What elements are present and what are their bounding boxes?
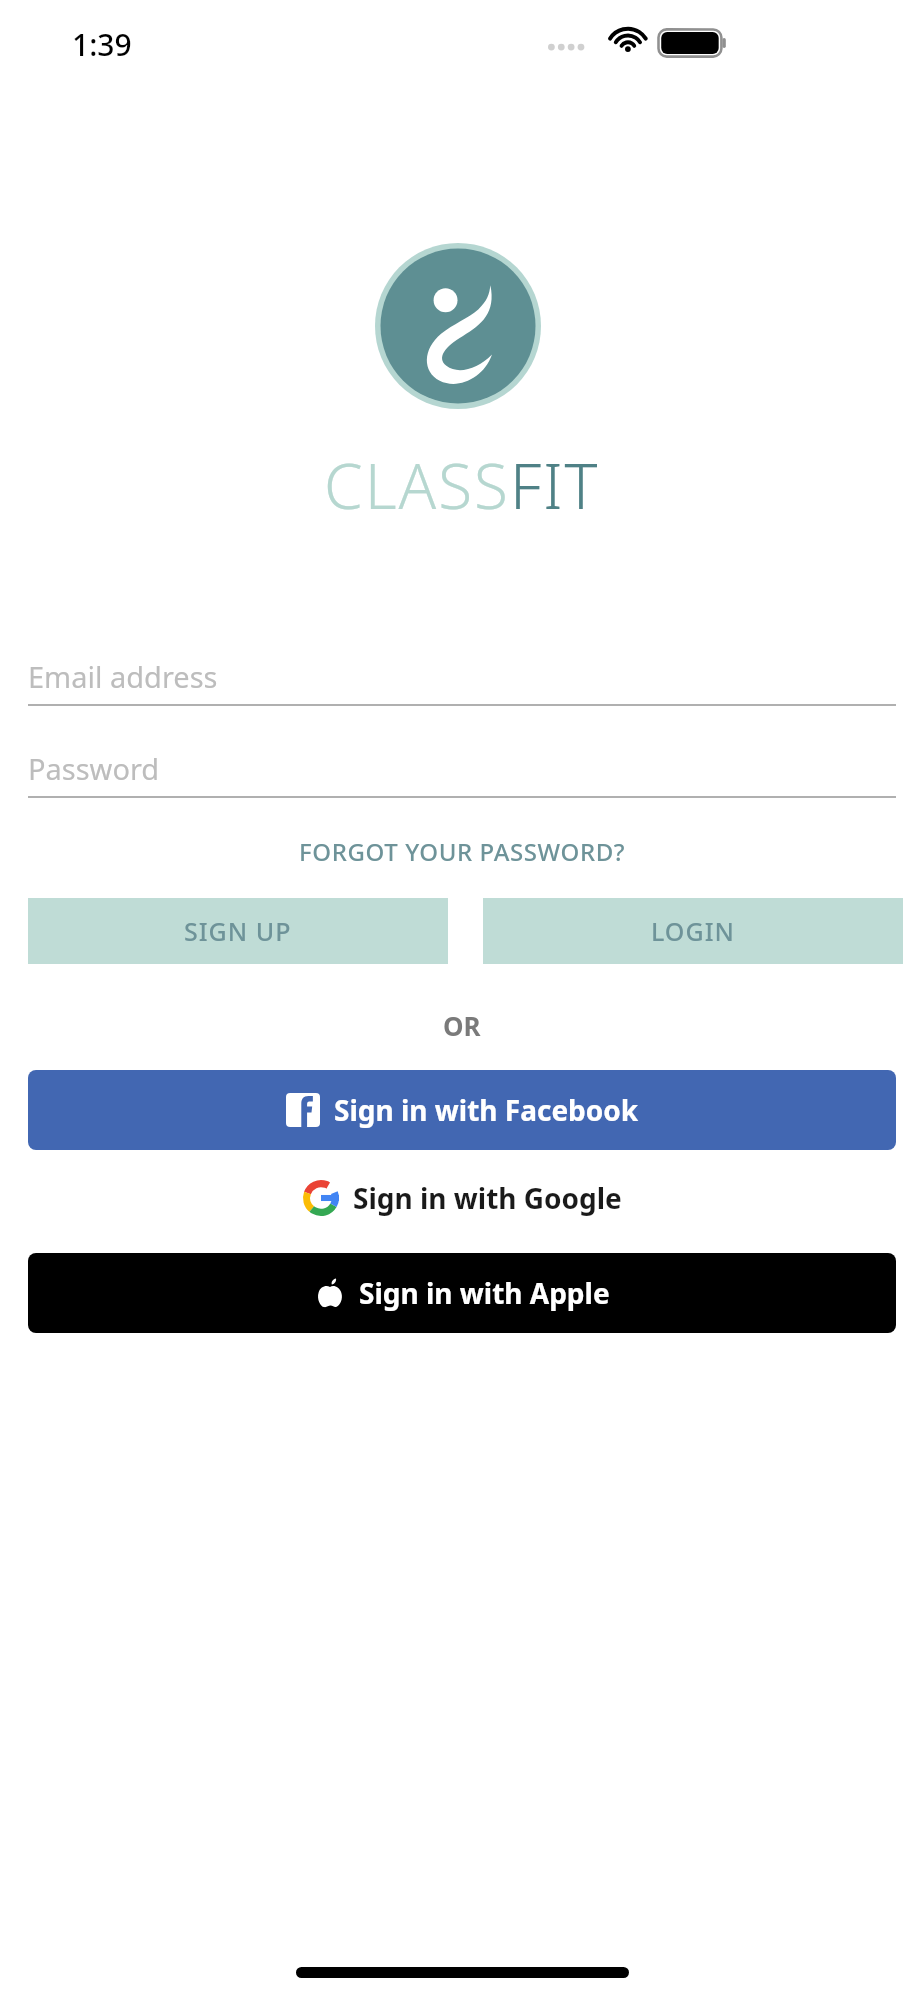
staticText: OR bbox=[443, 1008, 481, 1043]
button[interactable]: Sign in with Google bbox=[28, 1158, 896, 1238]
staticText: FIT bbox=[510, 443, 600, 527]
button[interactable]: LOGIN bbox=[483, 898, 903, 964]
button[interactable]: SIGN UP bbox=[28, 898, 448, 964]
button[interactable]: Password bbox=[28, 740, 896, 798]
staticText: FORGOT YOUR PASSWORD? bbox=[299, 835, 626, 868]
staticText: Sign in with Facebook bbox=[334, 1091, 639, 1129]
staticText: Sign in with Google bbox=[353, 1179, 622, 1217]
button[interactable]: Sign in with Facebook bbox=[28, 1070, 896, 1150]
staticText: SIGN UP bbox=[184, 914, 292, 948]
staticText: CLASS bbox=[324, 443, 510, 527]
staticText: LOGIN bbox=[651, 914, 735, 948]
staticText: Sign in with Apple bbox=[359, 1274, 610, 1312]
staticText: Password bbox=[28, 749, 160, 788]
button[interactable]: Email address bbox=[28, 648, 896, 706]
staticText: 1:39 bbox=[72, 24, 132, 65]
button[interactable]: FORGOT YOUR PASSWORD? bbox=[0, 828, 924, 874]
staticText: Email address bbox=[28, 657, 218, 696]
button[interactable]: Sign in with Apple bbox=[28, 1253, 896, 1333]
